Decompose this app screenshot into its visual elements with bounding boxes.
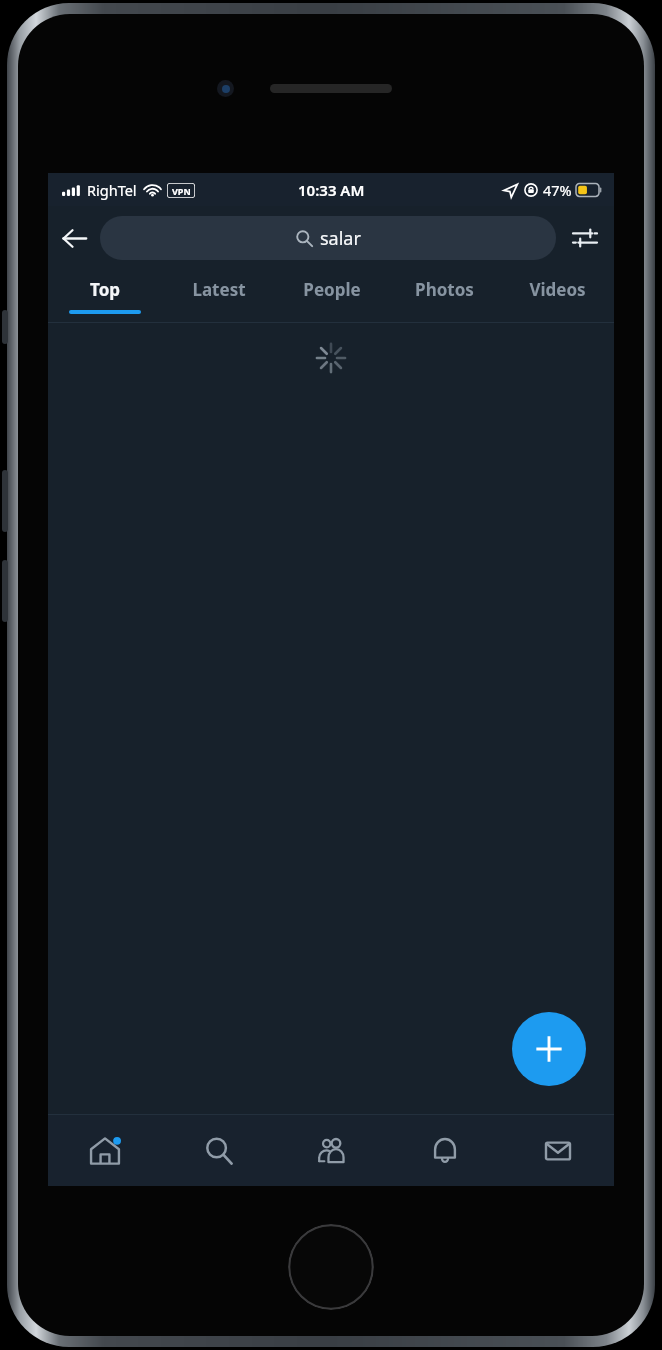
staticText: Latest <box>192 278 246 301</box>
button[interactable]: Back <box>48 212 100 264</box>
button[interactable]: Messages <box>501 1115 614 1186</box>
staticText: salar <box>320 226 361 251</box>
button[interactable]: Latest <box>162 269 275 322</box>
staticText: Top <box>90 278 120 301</box>
staticText: 10:33 AM <box>298 180 365 200</box>
staticText: Videos <box>529 278 586 301</box>
staticText: 47% <box>543 180 572 200</box>
button[interactable]: Communities <box>275 1115 388 1186</box>
staticText: Photos <box>415 278 474 301</box>
staticText: People <box>303 278 361 301</box>
button[interactable]: Notifications <box>388 1115 501 1186</box>
button[interactable]: Top <box>48 269 162 322</box>
button[interactable]: Videos <box>501 269 614 322</box>
button[interactable]: Search filters <box>556 209 614 267</box>
button[interactable]: Home <box>48 1115 162 1186</box>
button[interactable]: salar <box>100 216 556 260</box>
button[interactable]: Compose new post <box>512 1012 586 1086</box>
staticText: VPN <box>172 185 191 197</box>
button[interactable]: Photos <box>388 269 501 322</box>
staticText: RighTel <box>87 180 137 200</box>
button[interactable]: Search <box>162 1115 275 1186</box>
button[interactable]: People <box>275 269 388 322</box>
